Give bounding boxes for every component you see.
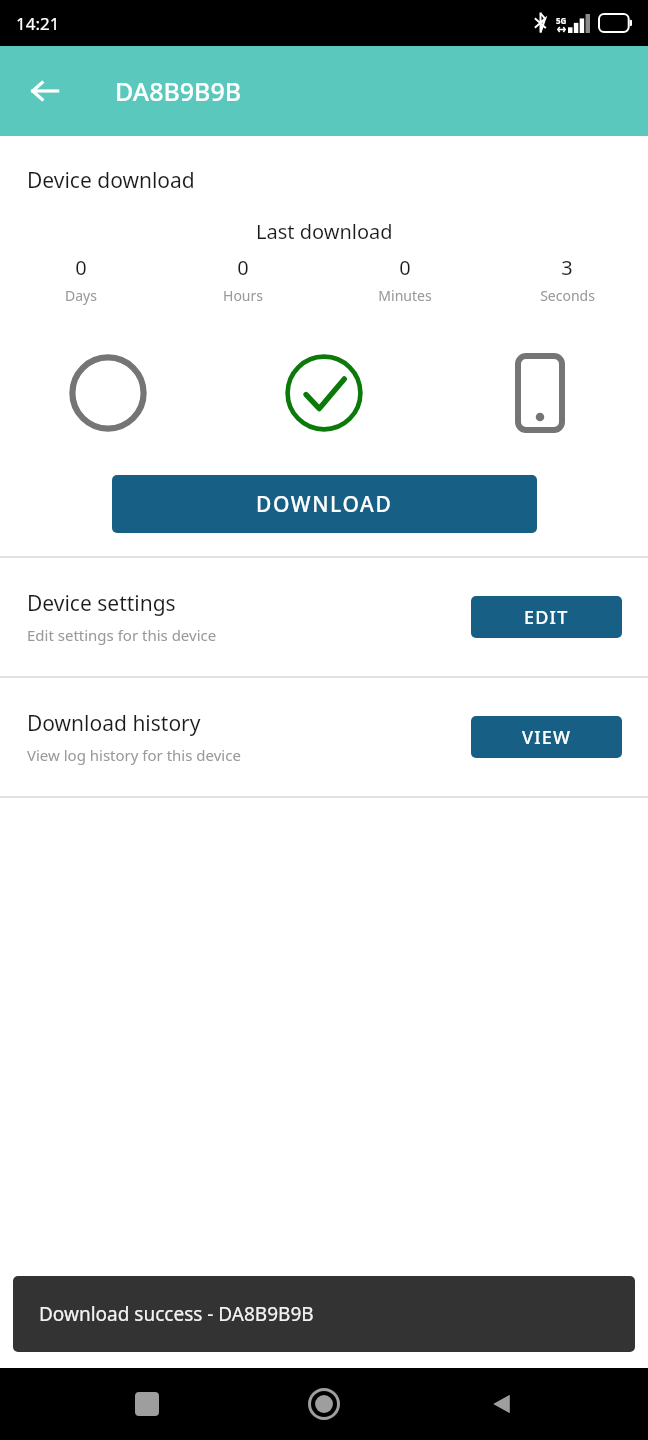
button[interactable]: Download history: [0, 678, 648, 796]
staticText: 3: [561, 254, 573, 281]
staticText: Device settings: [27, 589, 176, 618]
staticText: Device download: [27, 166, 195, 195]
button[interactable]: VIEW: [471, 716, 622, 758]
button[interactable]: Download success - DA8B9B9B: [13, 1276, 635, 1352]
staticText: Seconds: [540, 286, 595, 305]
button[interactable]: Recent apps: [116, 1373, 178, 1435]
button[interactable]: Device settings: [0, 558, 648, 676]
button[interactable]: Back: [471, 1373, 533, 1435]
staticText: Minutes: [378, 286, 432, 305]
staticText: Last download: [256, 218, 393, 245]
button[interactable]: EDIT: [471, 596, 622, 638]
staticText: Hours: [223, 286, 263, 305]
button[interactable]: DOWNLOAD: [112, 475, 537, 533]
staticText: Download success - DA8B9B9B: [39, 1301, 314, 1327]
staticText: 0: [237, 254, 249, 281]
staticText: Days: [65, 286, 97, 305]
staticText: VIEW: [522, 725, 572, 750]
button[interactable]: Home: [293, 1373, 355, 1435]
staticText: Download history: [27, 709, 201, 738]
button[interactable]: Back: [22, 68, 68, 114]
staticText: EDIT: [524, 605, 569, 630]
staticText: DOWNLOAD: [256, 490, 393, 519]
staticText: 14:21: [16, 12, 60, 35]
staticText: 0: [75, 254, 87, 281]
staticText: Edit settings for this device: [27, 625, 217, 645]
staticText: 5G: [556, 15, 567, 26]
staticText: DA8B9B9B: [115, 74, 242, 108]
staticText: 0: [399, 254, 411, 281]
staticText: View log history for this device: [27, 745, 241, 765]
